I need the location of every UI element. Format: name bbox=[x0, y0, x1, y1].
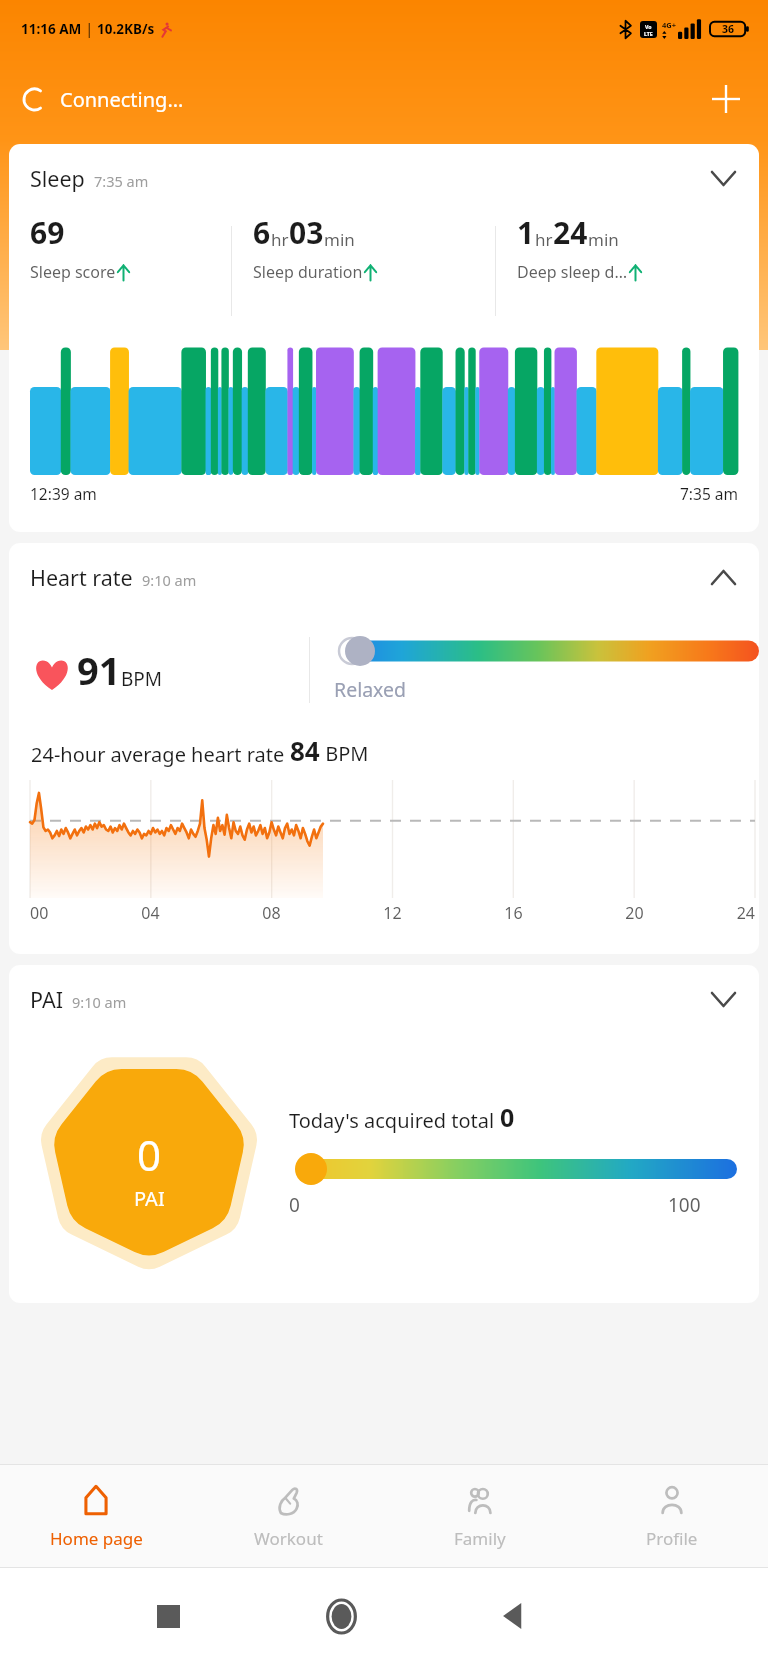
staticText: Vo bbox=[645, 23, 652, 30]
staticText: 04 bbox=[90, 902, 211, 924]
staticText: 0 bbox=[137, 1126, 162, 1183]
staticText: Relaxed bbox=[334, 676, 407, 703]
button[interactable]: Home bbox=[314, 1589, 368, 1643]
staticText: 6 bbox=[253, 212, 271, 253]
staticText: 100 bbox=[668, 1192, 701, 1218]
button[interactable]: Back bbox=[487, 1589, 541, 1643]
staticText: Family bbox=[454, 1527, 506, 1550]
staticText: hr bbox=[271, 228, 289, 251]
staticText: 08 bbox=[211, 902, 332, 924]
staticText: Deep sleep d… bbox=[517, 261, 628, 283]
staticText: Connecting… bbox=[60, 86, 184, 113]
staticText: BPM bbox=[121, 666, 163, 692]
button[interactable]: Profile bbox=[576, 1465, 768, 1567]
staticText: 7:35 am bbox=[94, 171, 149, 191]
staticText: 7:35 am bbox=[680, 483, 738, 504]
staticText: Sleep score bbox=[30, 261, 116, 283]
button[interactable]: Expand bbox=[699, 154, 747, 202]
staticText: min bbox=[588, 228, 619, 251]
button[interactable]: Workout bbox=[192, 1465, 384, 1567]
staticText: 12 bbox=[332, 902, 453, 924]
staticText: 69 bbox=[30, 212, 65, 253]
staticText: 11:16 AM bbox=[21, 20, 82, 38]
staticText: Home page bbox=[50, 1527, 143, 1550]
staticText: Heart rate bbox=[30, 563, 133, 592]
staticText: | bbox=[82, 20, 97, 38]
staticText: Profile bbox=[646, 1527, 698, 1550]
staticText: PAI bbox=[30, 985, 63, 1014]
staticText: PAI bbox=[134, 1185, 165, 1212]
staticText: 0 bbox=[500, 1100, 515, 1134]
button[interactable]: Sleep bbox=[9, 144, 759, 532]
staticText: 00 bbox=[30, 902, 90, 924]
button[interactable]: Home page bbox=[0, 1465, 192, 1567]
button[interactable]: PAI bbox=[9, 965, 759, 1303]
staticText: Today's acquired total bbox=[289, 1107, 500, 1134]
staticText: 36 bbox=[722, 22, 735, 36]
staticText: 24 bbox=[553, 212, 588, 253]
button[interactable]: Add device bbox=[700, 73, 752, 125]
staticText: Sleep bbox=[30, 164, 85, 193]
staticText: 9:10 am bbox=[142, 570, 197, 590]
staticText: 1 bbox=[517, 212, 535, 253]
button[interactable]: Heart rate bbox=[9, 543, 759, 954]
staticText: 24 bbox=[695, 902, 755, 924]
staticText: 20 bbox=[574, 902, 695, 924]
staticText: 9:10 am bbox=[72, 992, 127, 1012]
staticText: hr bbox=[535, 228, 553, 251]
staticText: 24-hour average heart rate bbox=[31, 741, 290, 768]
staticText: 4G+ bbox=[662, 20, 677, 30]
staticText: LTE bbox=[644, 30, 653, 37]
staticText: 12:39 am bbox=[30, 483, 97, 504]
staticText: 10.2KB/s bbox=[97, 20, 155, 38]
button[interactable]: Recents bbox=[141, 1589, 195, 1643]
staticText: Workout bbox=[254, 1527, 323, 1550]
staticText: min bbox=[324, 228, 355, 251]
staticText: BPM bbox=[320, 740, 369, 767]
staticText: 0 bbox=[289, 1192, 300, 1218]
staticText: 16 bbox=[453, 902, 574, 924]
staticText: 91 bbox=[77, 644, 121, 696]
staticText: 84 bbox=[290, 733, 320, 768]
button[interactable]: Family bbox=[384, 1465, 576, 1567]
staticText: 03 bbox=[289, 212, 324, 253]
button[interactable]: Expand bbox=[699, 975, 747, 1023]
button[interactable]: Collapse bbox=[699, 553, 747, 601]
staticText: Sleep duration bbox=[253, 261, 363, 283]
